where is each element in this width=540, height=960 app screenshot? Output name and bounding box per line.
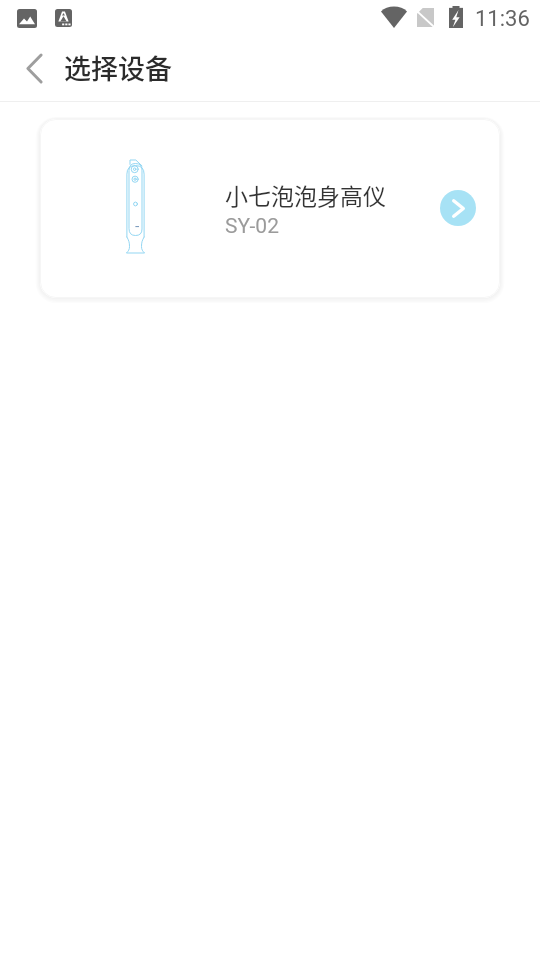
staticText: 小七泡泡身高仪	[225, 178, 386, 211]
staticText: 选择设备	[64, 48, 172, 87]
button[interactable]: Back	[8, 36, 60, 101]
button[interactable]: 小七泡泡身高仪	[40, 119, 500, 298]
staticText: 11:36	[475, 6, 530, 32]
staticText: SY-02	[225, 214, 279, 239]
button[interactable]: Select device	[440, 190, 476, 226]
